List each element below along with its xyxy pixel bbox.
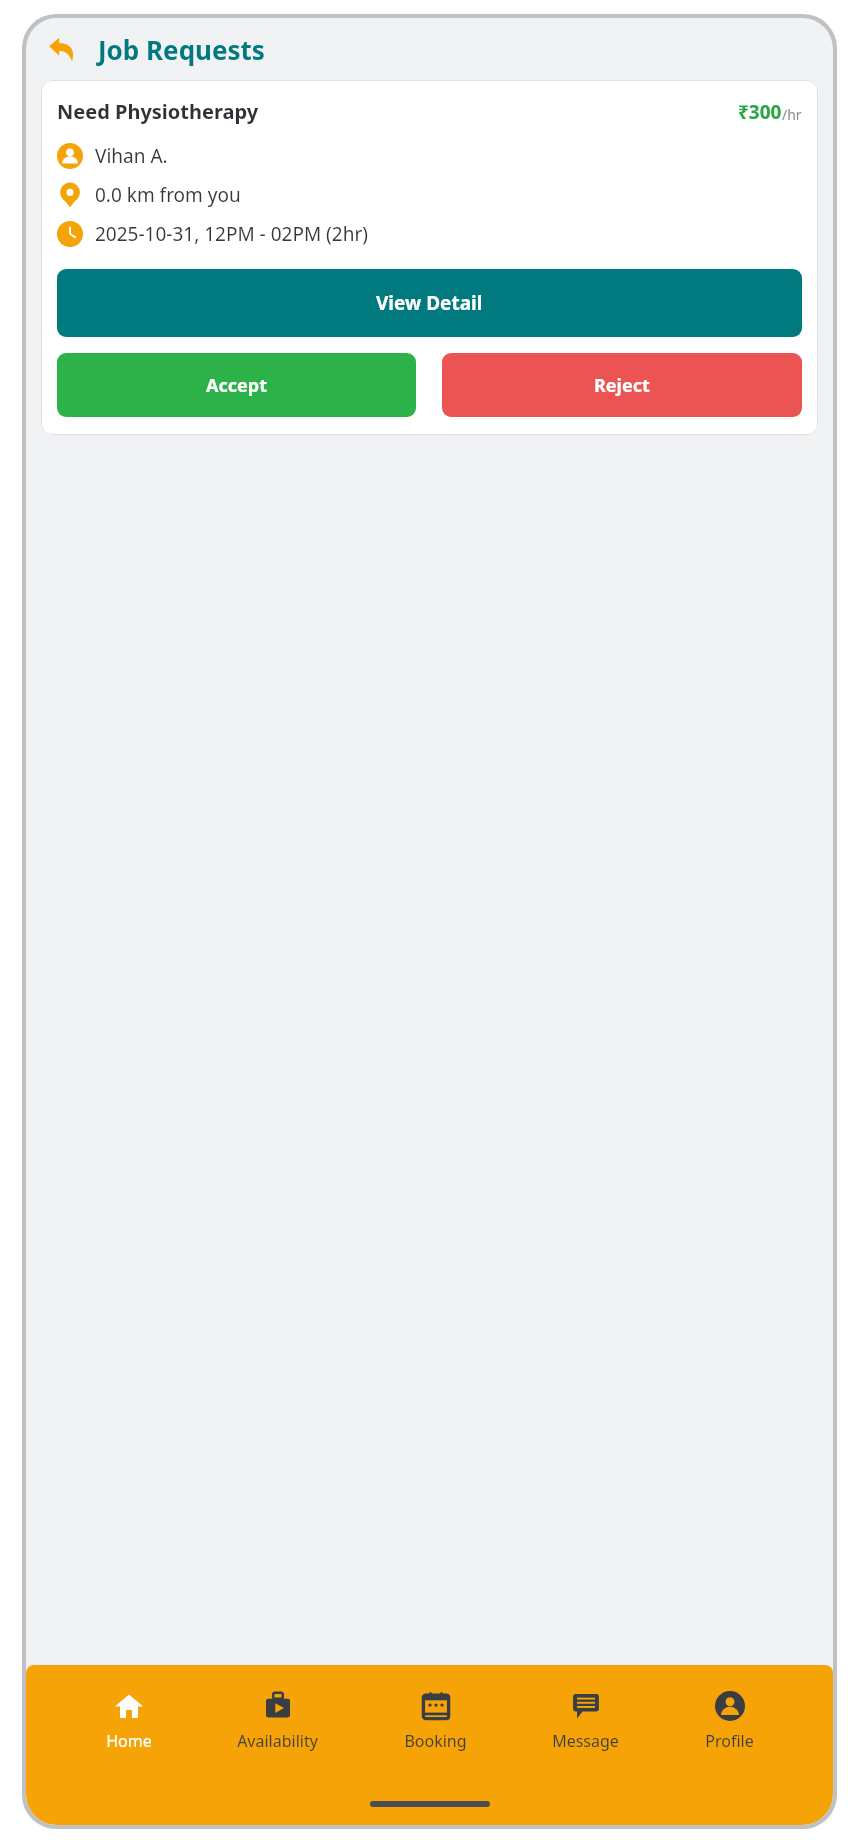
button[interactable]: Accept xyxy=(57,353,416,417)
staticText: /hr xyxy=(782,105,802,124)
button[interactable]: Booking xyxy=(398,1689,473,1754)
staticText: Reject xyxy=(594,373,650,398)
button[interactable]: Home xyxy=(100,1689,158,1754)
staticText: 0.0 km from you xyxy=(95,182,241,208)
button[interactable]: View Detail xyxy=(57,269,802,337)
staticText: View Detail xyxy=(376,290,483,316)
button[interactable]: Availability xyxy=(231,1689,324,1754)
staticText: Home xyxy=(106,1730,152,1752)
button[interactable]: Back xyxy=(40,27,84,71)
button[interactable]: Message xyxy=(546,1689,625,1754)
staticText: Vihan A. xyxy=(95,143,168,169)
staticText: Need Physiotherapy xyxy=(57,98,259,125)
button[interactable]: Reject xyxy=(442,353,802,417)
staticText: ₹300 xyxy=(738,99,782,125)
staticText: Job Requests xyxy=(98,32,265,67)
staticText: Message xyxy=(552,1730,619,1752)
button[interactable]: Profile xyxy=(699,1689,760,1754)
staticText: Booking xyxy=(404,1730,467,1752)
staticText: Accept xyxy=(206,373,267,398)
staticText: 2025-10-31, 12PM - 02PM (2hr) xyxy=(95,221,368,247)
staticText: Profile xyxy=(705,1730,754,1752)
staticText: Availability xyxy=(237,1730,318,1752)
